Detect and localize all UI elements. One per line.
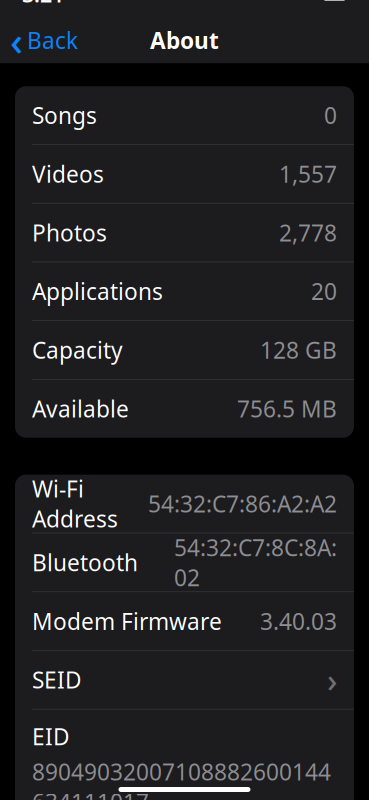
button[interactable]: Wi-Fi Address <box>15 475 354 533</box>
staticText: Modem Firmware <box>32 606 222 636</box>
staticText: Videos <box>32 159 104 189</box>
staticText: Capacity <box>32 335 123 365</box>
staticText: 54:32:C7:86:A2:A2 <box>148 489 337 519</box>
staticText: 128 GB <box>260 335 337 365</box>
button[interactable]: Applications <box>15 262 354 320</box>
staticText: Photos <box>32 217 107 248</box>
staticText: SEID <box>32 665 82 695</box>
staticText: Wi-Fi Address <box>32 474 118 534</box>
staticText: 1,557 <box>279 159 337 189</box>
staticText: Available <box>32 394 129 424</box>
staticText: 89049032007108882600144634111017 <box>32 757 331 800</box>
button[interactable]: SEID <box>15 651 354 709</box>
staticText: 66 <box>327 0 341 2</box>
staticText: Songs <box>32 100 97 130</box>
button[interactable]: EID <box>15 709 354 800</box>
staticText: Bluetooth <box>32 547 138 577</box>
staticText: Back <box>27 25 78 55</box>
staticText: 0 <box>324 100 337 130</box>
button[interactable]: Photos <box>15 204 354 262</box>
staticText: 756.5 MB <box>237 394 337 424</box>
staticText: › <box>327 659 337 701</box>
staticText: 3.40.03 <box>260 606 337 636</box>
button[interactable]: Videos <box>15 145 354 203</box>
button[interactable]: Songs <box>15 86 354 144</box>
staticText: Applications <box>32 276 163 306</box>
button[interactable]: Available <box>15 380 354 438</box>
staticText: 2,778 <box>279 217 337 248</box>
staticText: 54:32:C7:8C:8A:02 <box>174 532 337 592</box>
button[interactable]: ‹ <box>0 10 78 71</box>
staticText: 20 <box>311 276 337 306</box>
staticText: About <box>150 25 219 55</box>
button[interactable]: Bluetooth <box>15 533 354 591</box>
staticText: 3:21 <box>22 0 64 8</box>
staticText: ‹ <box>10 14 23 67</box>
staticText: EID <box>32 721 70 752</box>
button[interactable]: Modem Firmware <box>15 592 354 650</box>
button[interactable]: Capacity <box>15 321 354 379</box>
